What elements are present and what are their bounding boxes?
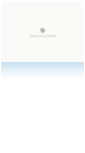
staticText: Powered by Claude <box>28 34 56 38</box>
